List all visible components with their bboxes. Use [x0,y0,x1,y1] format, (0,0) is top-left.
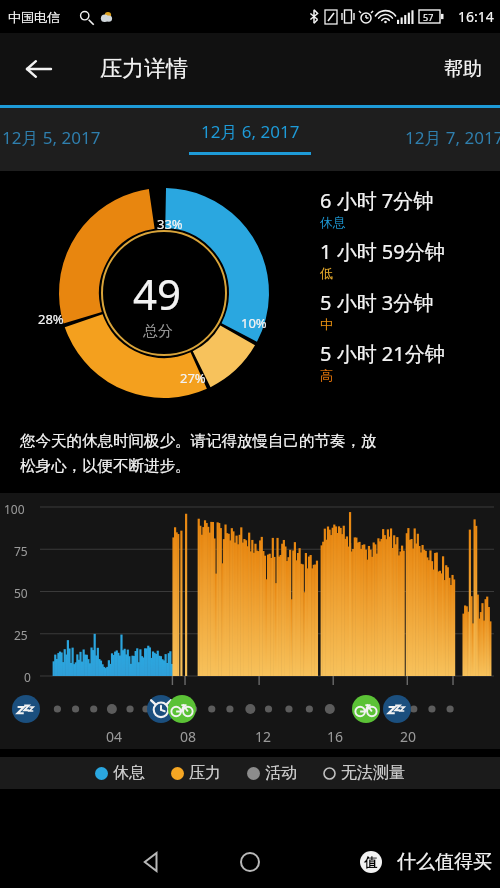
staticText: 04 [106,727,123,746]
staticText: 6 小时 7分钟 [320,187,434,214]
button[interactable]: 帮助 [426,45,500,93]
button[interactable]: 12月 5, 2017 [0,120,107,155]
staticText: 中 [320,316,333,332]
staticText: 无法测量 [341,763,405,783]
staticText: 休息 [320,214,346,230]
staticText: 0 [24,669,31,685]
staticText: 27% [180,369,206,387]
staticText: 帮助 [444,57,482,81]
button[interactable]: 无法测量 [323,763,405,783]
button[interactable]: Alarm [147,695,175,723]
staticText: 20 [400,727,417,746]
staticText: 50 [14,585,28,601]
button[interactable]: Sleep [383,695,411,723]
button[interactable]: Back [14,45,62,93]
staticText: 您今天的休息时间极少。请记得放慢自己的节奏，放 松身心，以便不断进步。 [20,431,377,475]
staticText: 12 [255,727,272,746]
staticText: 低 [320,265,333,281]
staticText: 高 [320,367,333,383]
staticText: 12月 6, 2017 [201,120,300,143]
staticText: 压力详情 [100,55,188,83]
staticText: 08 [180,727,197,746]
button[interactable]: 12月 6, 2017 [189,120,311,155]
staticText: 5 小时 3分钟 [320,289,434,316]
button[interactable]: 休息 [95,763,145,783]
staticText: 16:14 [458,7,494,26]
staticText: 中国电信 [8,9,60,25]
button[interactable]: Home [228,840,272,884]
staticText: 100 [4,501,25,517]
staticText: 5 小时 21分钟 [320,340,445,367]
button[interactable]: 压力 [171,763,221,783]
staticText: 16 [327,727,344,746]
staticText: 28% [38,310,64,328]
button[interactable]: Sleep [12,695,40,723]
staticText: 57 [423,11,434,23]
button[interactable]: Cycling [168,695,196,723]
staticText: 活动 [265,763,297,783]
staticText: 75 [14,543,28,559]
staticText: 什么值得买 [397,850,492,874]
staticText: 休息 [113,763,145,783]
button[interactable]: 12月 7, 2017 [399,120,500,155]
staticText: 10% [241,314,267,332]
staticText: 1 小时 59分钟 [320,238,445,265]
staticText: 值 [364,854,377,870]
button[interactable]: Cycling [352,695,380,723]
staticText: 压力 [189,763,221,783]
button[interactable]: 活动 [247,763,297,783]
staticText: 49 [133,265,182,322]
staticText: 33% [157,215,183,233]
staticText: 总分 [143,322,173,341]
staticText: 25 [14,627,28,643]
button[interactable]: Back [130,840,174,884]
